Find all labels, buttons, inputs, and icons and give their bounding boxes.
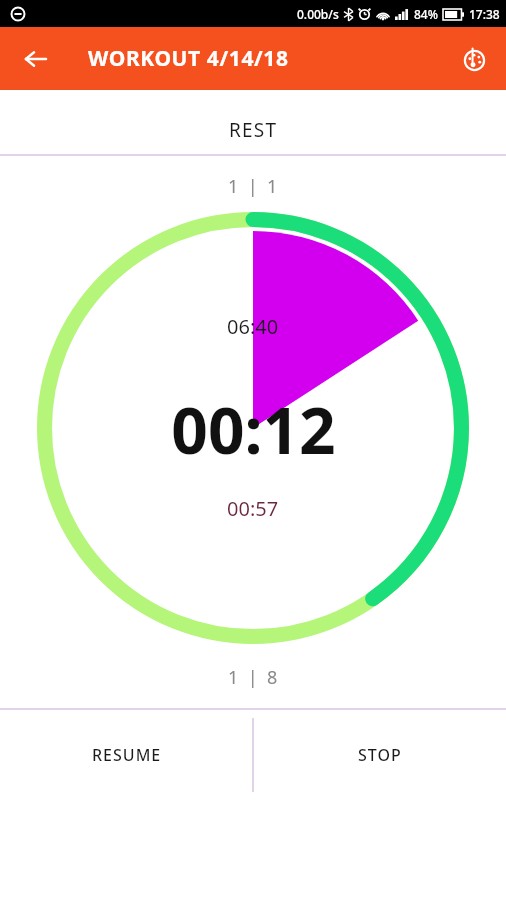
- button[interactable]: Back: [12, 35, 60, 83]
- button[interactable]: RESUME: [0, 710, 253, 800]
- staticText: 00:12: [171, 386, 336, 473]
- staticText: 1 | 1: [228, 174, 278, 199]
- staticText: REST: [229, 117, 278, 143]
- button[interactable]: Change theme color: [452, 37, 496, 81]
- button[interactable]: STOP: [253, 710, 506, 800]
- staticText: 1 | 8: [228, 665, 278, 690]
- staticText: 00:57: [227, 495, 279, 522]
- staticText: RESUME: [92, 744, 162, 766]
- staticText: WORKOUT 4/14/18: [88, 44, 289, 73]
- staticText: STOP: [358, 744, 402, 766]
- staticText: 84%: [414, 6, 438, 22]
- staticText: 0.00b/s: [297, 6, 339, 22]
- staticText: 17:38: [469, 6, 500, 22]
- staticText: 06:40: [227, 313, 279, 340]
